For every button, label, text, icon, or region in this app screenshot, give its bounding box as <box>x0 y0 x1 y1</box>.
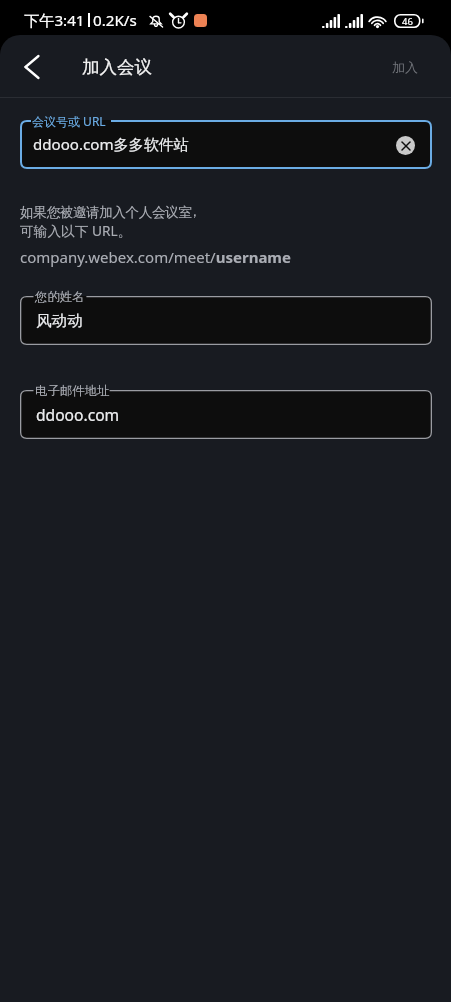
button[interactable]: Back <box>11 46 53 88</box>
button[interactable]: Clear text <box>396 136 415 155</box>
staticText: ddooo.com多多软件站 <box>33 134 189 155</box>
staticText: ddooo.com <box>36 404 120 425</box>
button[interactable] <box>20 120 432 169</box>
staticText: 您的姓名 <box>35 289 85 305</box>
button[interactable]: 加入 <box>382 51 428 83</box>
staticText: 如果您被邀请加入个人会议室 <box>20 204 192 221</box>
staticText: ， <box>188 203 202 220</box>
button[interactable] <box>20 390 432 439</box>
staticText: 加入会议 <box>82 56 152 78</box>
button[interactable] <box>20 296 432 345</box>
staticText: 会议号或 URL <box>32 113 106 129</box>
staticText: 可输入以下 URL。 <box>20 221 132 240</box>
staticText: 下午3:41 <box>24 10 85 31</box>
staticText: 加入 <box>392 59 418 75</box>
staticText: 0.2K/s <box>93 10 137 31</box>
staticText: 风动动 <box>36 311 83 331</box>
staticText: 46 <box>402 15 413 28</box>
staticText: 电子邮件地址 <box>35 383 110 399</box>
staticText: company.webex.com/meet/username <box>20 247 291 267</box>
